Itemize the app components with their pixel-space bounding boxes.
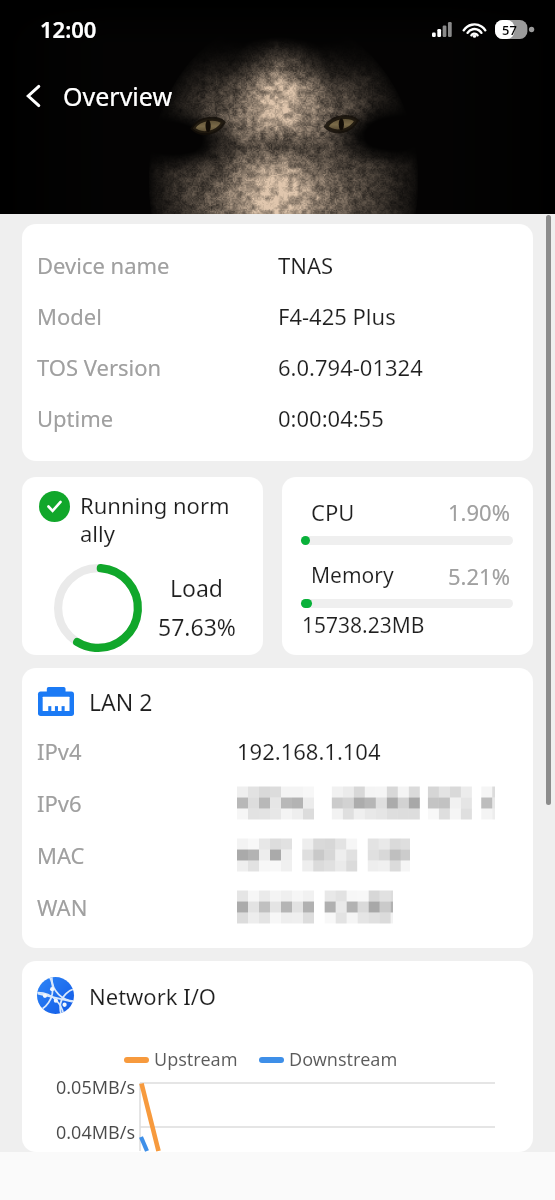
button[interactable]: Uptime <box>37 392 518 443</box>
staticText: F4-425 Plus <box>278 301 396 331</box>
staticText: 192.168.1.104 <box>237 736 381 766</box>
staticText: CPU <box>311 497 355 527</box>
button[interactable]: IPv4 <box>37 725 518 777</box>
staticText: 0.04MB/s <box>56 1120 136 1145</box>
staticText: 0:00:04:55 <box>278 403 384 433</box>
staticText: 5.21% <box>448 561 510 591</box>
staticText: TNAS <box>278 250 334 280</box>
button[interactable]: WAN <box>37 881 518 933</box>
button[interactable]: Model <box>37 290 518 341</box>
staticText: 6.0.794-01324 <box>278 352 423 382</box>
staticText: 0.05MB/s <box>56 1075 136 1100</box>
button[interactable]: TOS Version <box>37 341 518 392</box>
staticText: Memory <box>311 561 394 590</box>
staticText: MAC <box>37 840 85 870</box>
staticText: IPv6 <box>37 788 82 818</box>
staticText: WAN <box>37 892 88 922</box>
staticText: IPv4 <box>37 736 82 766</box>
staticText: Device name <box>37 250 170 280</box>
staticText: Downstream <box>289 1047 398 1072</box>
button[interactable]: Running norm ally <box>22 477 263 655</box>
staticText: 57 <box>502 21 517 39</box>
staticText: Overview <box>63 79 173 113</box>
button[interactable]: Device name <box>37 239 518 290</box>
staticText: 57.63% <box>158 611 236 642</box>
staticText: 15738.23MB <box>302 611 425 640</box>
button[interactable]: CPU <box>282 477 533 655</box>
staticText: 1.90% <box>448 497 510 527</box>
button[interactable]: MAC <box>37 829 518 881</box>
staticText: Running norm ally <box>80 490 230 549</box>
button[interactable]: Back <box>12 74 56 118</box>
staticText: 12:00 <box>40 14 97 44</box>
staticText: TOS Version <box>37 352 162 382</box>
staticText: Network I/O <box>89 981 217 1011</box>
staticText: LAN 2 <box>89 686 153 716</box>
staticText: Load <box>170 572 224 603</box>
staticText: Upstream <box>154 1047 238 1072</box>
staticText: Uptime <box>37 403 114 433</box>
button[interactable]: IPv6 <box>37 777 518 829</box>
staticText: Model <box>37 301 102 331</box>
